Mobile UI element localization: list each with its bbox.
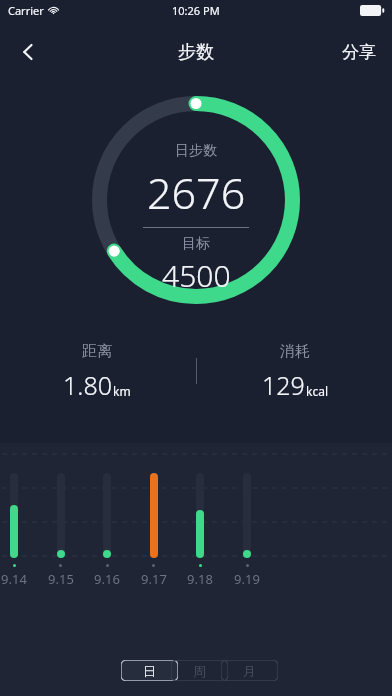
button[interactable]: Back (6, 30, 50, 74)
staticText: 2676 (147, 163, 246, 222)
button[interactable]: 周 (171, 660, 228, 681)
staticText: 周 (193, 663, 206, 679)
staticText: 9.14 (0, 570, 38, 588)
staticText: 步数 (178, 41, 214, 64)
staticText: 1.80 (63, 368, 112, 402)
staticText: 129 (262, 368, 305, 402)
staticText: 9.16 (83, 570, 131, 588)
button[interactable]: 日 (121, 660, 178, 681)
staticText: 9.15 (37, 570, 85, 588)
button[interactable]: 分享 (338, 34, 380, 71)
staticText: 9.17 (130, 570, 178, 588)
staticText: 日 (143, 663, 156, 679)
staticText: 9.18 (176, 570, 224, 588)
staticText: Carrier (8, 3, 44, 18)
staticText: 消耗 (280, 342, 310, 361)
staticText: 月 (243, 663, 256, 679)
button[interactable]: 月 (221, 660, 278, 681)
staticText: 10:26 PM (172, 3, 220, 18)
staticText: 分享 (342, 42, 376, 63)
staticText: km (113, 383, 131, 399)
staticText: 日步数 (175, 142, 217, 160)
staticText: 9.19 (223, 570, 271, 588)
staticText: 目标 (182, 235, 210, 253)
staticText: 距离 (82, 342, 112, 361)
staticText: kcal (306, 383, 328, 399)
staticText: 4500 (162, 255, 231, 296)
